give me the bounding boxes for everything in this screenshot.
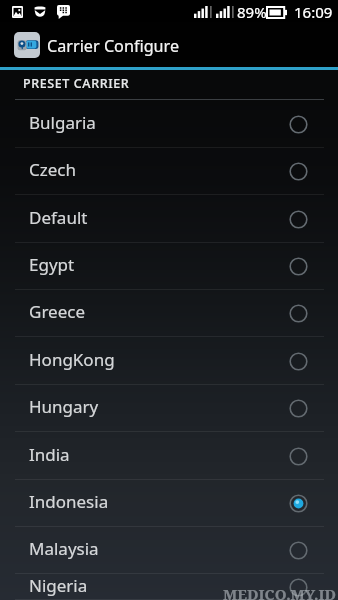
button[interactable]: Nigeria bbox=[0, 574, 338, 600]
button[interactable]: Greece bbox=[0, 290, 338, 337]
staticText: Carrier Configure bbox=[47, 35, 180, 57]
staticText: PRESET CARRIER bbox=[23, 75, 130, 92]
staticText: Malaysia bbox=[29, 537, 99, 560]
button[interactable]: Carrier Configure bbox=[0, 22, 338, 67]
staticText: Default bbox=[29, 206, 88, 229]
staticText: Indonesia bbox=[29, 490, 109, 513]
staticText: India bbox=[29, 443, 70, 466]
button[interactable]: HongKong bbox=[0, 337, 338, 385]
button[interactable]: Malaysia bbox=[0, 527, 338, 574]
staticText: Hungary bbox=[29, 395, 99, 418]
button[interactable]: India bbox=[0, 432, 338, 480]
button[interactable]: Hungary bbox=[0, 385, 338, 432]
staticText: Greece bbox=[29, 300, 85, 323]
button[interactable]: Czech bbox=[0, 148, 338, 195]
button[interactable]: Egypt bbox=[0, 243, 338, 290]
button[interactable]: Default bbox=[0, 195, 338, 243]
staticText: HongKong bbox=[29, 348, 115, 371]
staticText: Nigeria bbox=[29, 574, 88, 597]
staticText: Czech bbox=[29, 158, 76, 181]
staticText: 89% bbox=[237, 2, 267, 22]
staticText: 16:09 bbox=[294, 2, 333, 22]
staticText: MEDICO.MY.ID bbox=[223, 584, 336, 600]
staticText: Egypt bbox=[29, 253, 75, 276]
staticText: Bulgaria bbox=[29, 111, 96, 134]
button[interactable]: Indonesia bbox=[0, 480, 338, 527]
button[interactable]: Bulgaria bbox=[0, 100, 338, 148]
